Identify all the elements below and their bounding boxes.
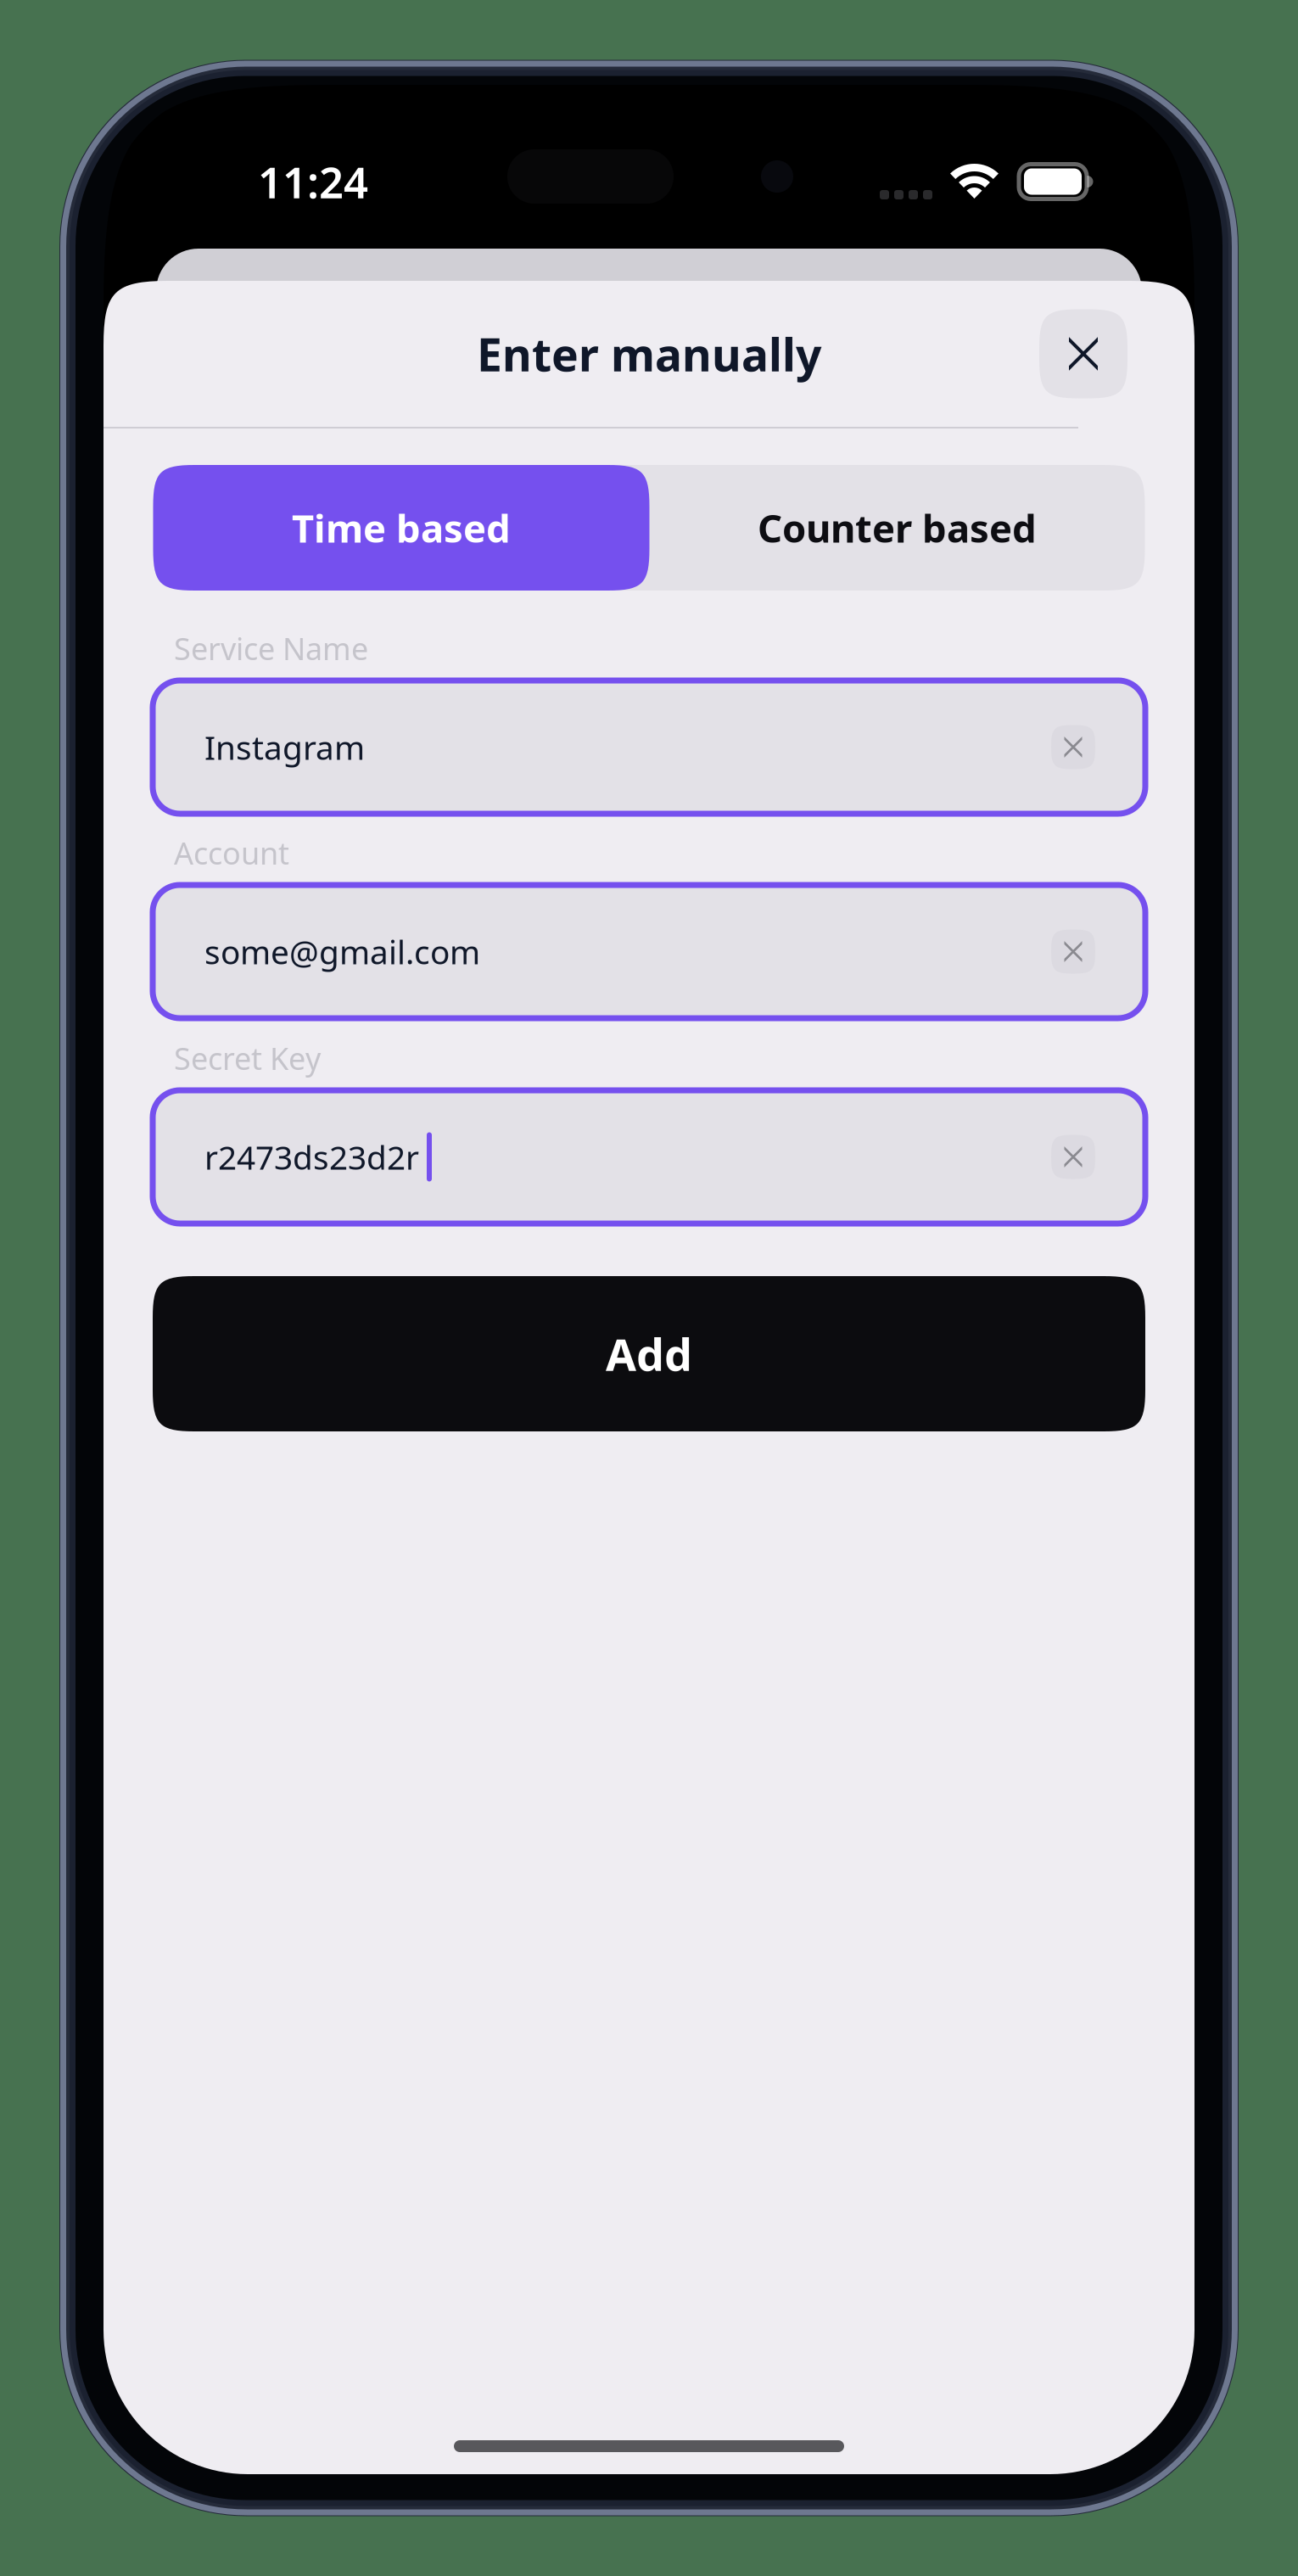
staticText: Account — [174, 832, 289, 873]
button[interactable]: Time based — [153, 465, 649, 591]
button[interactable]: Close — [1039, 309, 1127, 398]
staticText: Enter manually — [477, 324, 821, 384]
staticText: Add — [606, 1324, 692, 1383]
button[interactable]: Add — [153, 1276, 1145, 1431]
staticText: r2473ds23d2r — [204, 1135, 419, 1179]
staticText: Service Name — [174, 628, 368, 669]
staticText: some@gmail.com — [204, 930, 480, 973]
button[interactable]: Clear Account — [1051, 930, 1095, 974]
staticText: Time based — [292, 502, 511, 553]
button[interactable]: Counter based — [649, 465, 1145, 591]
staticText: Secret Key — [174, 1038, 321, 1078]
staticText: Counter based — [758, 502, 1037, 553]
button[interactable]: Clear Service Name — [1051, 725, 1095, 769]
button[interactable]: Clear Secret Key — [1051, 1135, 1095, 1179]
staticText: 11:24 — [258, 153, 368, 210]
staticText: Instagram — [204, 725, 365, 769]
